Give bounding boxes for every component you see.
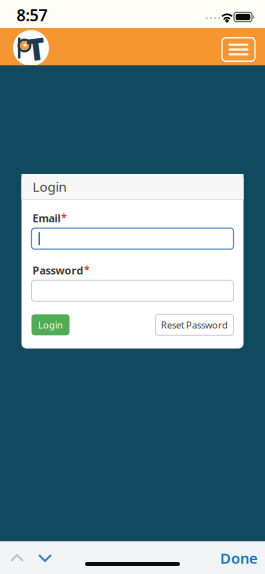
button[interactable] xyxy=(37,550,53,566)
button[interactable]: Reset Password xyxy=(155,314,233,335)
button[interactable]: Done xyxy=(220,548,258,568)
staticText: Login xyxy=(38,319,63,331)
staticText: * xyxy=(61,210,67,224)
staticText: * xyxy=(84,262,90,276)
staticText: Email xyxy=(32,211,60,225)
button[interactable] xyxy=(222,38,255,61)
staticText: Done xyxy=(220,548,258,568)
staticText: Reset Password xyxy=(161,319,228,331)
staticText: T xyxy=(27,28,45,69)
button[interactable] xyxy=(31,280,233,301)
button[interactable] xyxy=(31,228,233,249)
button[interactable]: Login xyxy=(31,314,69,335)
button[interactable]: T xyxy=(13,30,49,66)
staticText: 8:57 xyxy=(16,4,47,26)
button[interactable] xyxy=(9,550,25,566)
staticText: Login xyxy=(32,178,66,195)
staticText: Password xyxy=(32,263,83,277)
